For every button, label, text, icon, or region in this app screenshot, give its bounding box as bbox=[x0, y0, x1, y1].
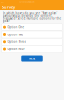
staticText: Option Two bbox=[7, 33, 23, 36]
button[interactable]: Option Two bbox=[1, 31, 62, 38]
staticText: Next bbox=[29, 57, 35, 60]
button[interactable]: Option Four bbox=[1, 46, 62, 53]
button[interactable]: Option Three bbox=[1, 38, 62, 45]
staticText: Option Four bbox=[7, 47, 24, 51]
button[interactable]: Option One bbox=[1, 24, 62, 31]
button[interactable]: Next bbox=[21, 56, 43, 62]
staticText: In which boxes do you see 'Start a plan'… bbox=[2, 11, 61, 23]
staticText: Survey bbox=[2, 4, 15, 10]
staticText: Option One bbox=[7, 25, 24, 29]
staticText: survey.example.com bbox=[19, 1, 34, 3]
staticText: Option Three bbox=[7, 40, 26, 43]
staticText: 9:41 bbox=[1, 1, 4, 3]
